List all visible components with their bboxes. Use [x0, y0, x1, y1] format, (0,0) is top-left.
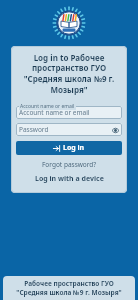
staticText: Рабочее пространство ГУО "Средняя школа …: [9, 279, 129, 297]
button[interactable]: Forgot password?: [16, 160, 122, 169]
staticText: Forgot password?: [42, 160, 97, 169]
button[interactable]: Password: [16, 123, 122, 136]
button[interactable]: Show password: [111, 126, 119, 134]
staticText: Password: [19, 125, 49, 134]
staticText: Log in to Рабочее пространство ГУО "Сред…: [16, 52, 122, 96]
staticText: Account name or email: [20, 103, 75, 110]
staticText: Log in: [63, 143, 85, 153]
button[interactable]: Account name or email: [16, 106, 122, 119]
button[interactable]: Log in: [16, 141, 122, 155]
staticText: Account name or email: [19, 108, 90, 117]
button[interactable]: Log in with a device: [16, 174, 122, 184]
staticText: Log in with a device: [35, 174, 104, 184]
